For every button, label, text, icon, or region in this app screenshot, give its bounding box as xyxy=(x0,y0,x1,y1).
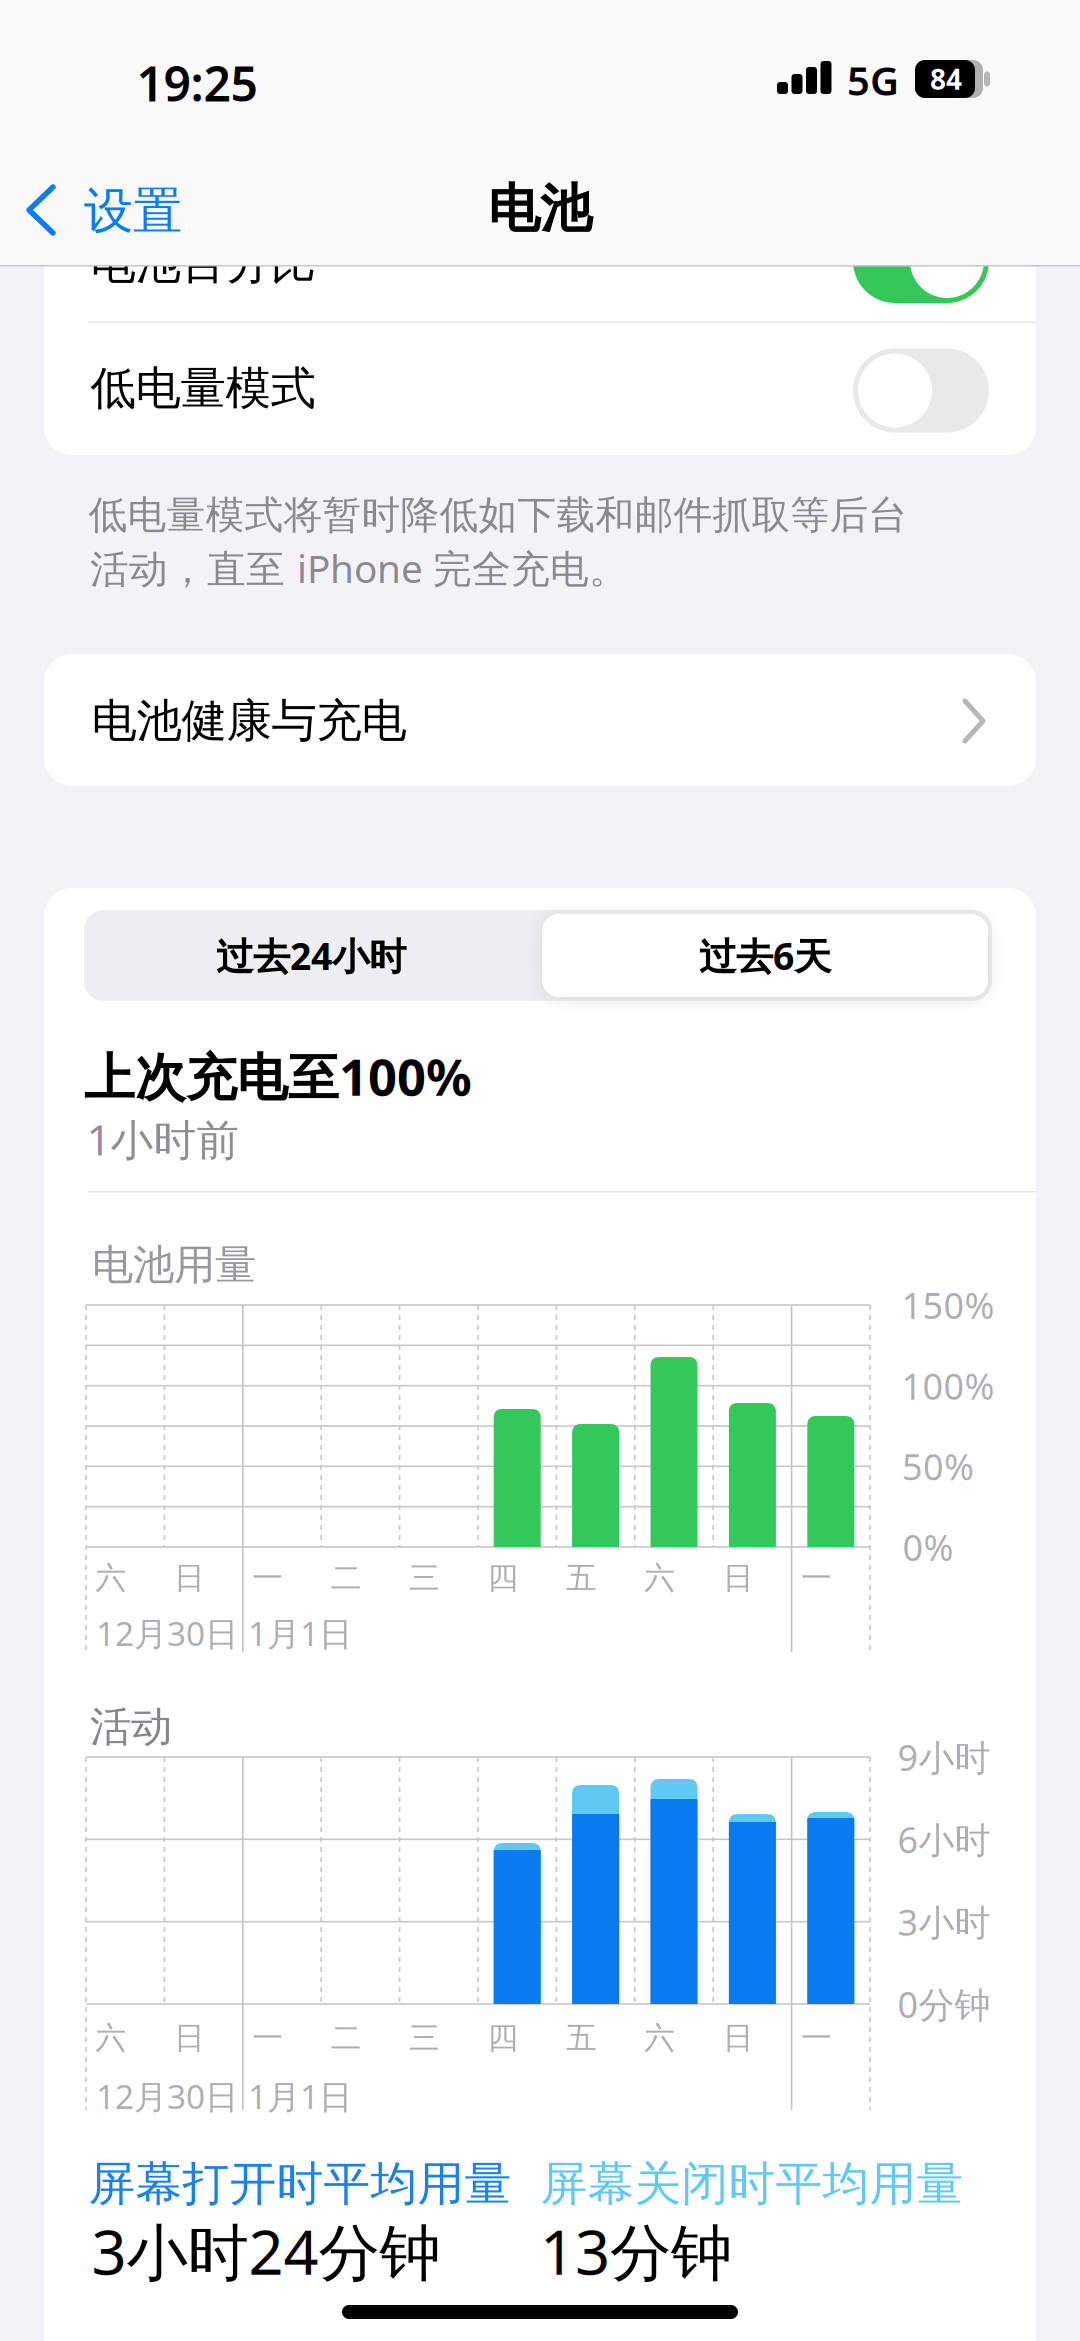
staticText: 四 xyxy=(487,2019,518,2057)
staticText: 设置 xyxy=(84,181,182,241)
staticText: 五 xyxy=(566,2019,597,2057)
staticText: 五 xyxy=(566,1559,597,1597)
staticText: 1小时前 xyxy=(86,1111,239,1167)
button[interactable]: 低电量模式 xyxy=(44,322,1036,455)
staticText: 5G xyxy=(847,53,899,106)
staticText: 一 xyxy=(801,1559,832,1597)
staticText: 一 xyxy=(252,2019,283,2057)
staticText: 活动 xyxy=(90,1702,172,1752)
button[interactable]: 电池百分比 xyxy=(44,189,1036,322)
staticText: 六 xyxy=(644,1559,675,1597)
staticText: 三 xyxy=(409,2019,440,2057)
staticText: 日 xyxy=(723,2019,754,2057)
staticText: 50% xyxy=(902,1442,974,1490)
staticText: 13分钟 xyxy=(540,2210,732,2292)
staticText: 100% xyxy=(901,1362,994,1410)
staticText: 12月30日 xyxy=(96,2074,238,2118)
staticText: 二 xyxy=(331,2019,362,2057)
staticText: 低电量模式将暂时降低如下载和邮件抓取等后台 xyxy=(88,491,907,539)
staticText: 84 xyxy=(930,60,962,98)
staticText: 电池用量 xyxy=(92,1240,256,1290)
staticText: 四 xyxy=(487,1559,518,1597)
staticText: 0分钟 xyxy=(897,1980,990,2028)
staticText: 六 xyxy=(95,2019,126,2057)
staticText: 3小时 xyxy=(897,1898,990,1946)
staticText: 12月30日 xyxy=(96,1611,238,1655)
staticText: 日 xyxy=(174,2019,205,2057)
staticText: 日 xyxy=(174,1559,205,1597)
staticText: 屏幕关闭时平均用量 xyxy=(540,2155,963,2213)
staticText: 三 xyxy=(409,1559,440,1597)
staticText: 活动，直至 iPhone 完全充电。 xyxy=(90,542,628,594)
staticText: 9小时 xyxy=(897,1733,990,1781)
staticText: 日 xyxy=(723,1559,754,1597)
staticText: 6小时 xyxy=(897,1815,990,1863)
staticText: 六 xyxy=(95,1559,126,1597)
staticText: 0% xyxy=(902,1523,953,1571)
staticText: 3小时24分钟 xyxy=(91,2210,440,2292)
staticText: 低电量模式 xyxy=(90,361,315,416)
staticText: 150% xyxy=(901,1281,994,1329)
staticText: 上次充电至100% xyxy=(84,1042,472,1110)
staticText: 电池 xyxy=(488,177,592,241)
staticText: 屏幕打开时平均用量 xyxy=(88,2155,511,2213)
staticText: 1月1日 xyxy=(248,1611,352,1655)
staticText: 电池健康与充电 xyxy=(91,693,406,749)
staticText: 19:25 xyxy=(136,51,257,115)
staticText: 过去24小时 xyxy=(216,931,406,980)
staticText: 一 xyxy=(252,1559,283,1597)
button[interactable]: 电池健康与充电 xyxy=(44,654,1036,786)
staticText: 一 xyxy=(801,2019,832,2057)
staticText: 电池百分比 xyxy=(90,235,315,291)
button[interactable]: 过去24小时 xyxy=(91,914,531,997)
staticText: 二 xyxy=(331,1559,362,1597)
button[interactable]: 返回设置 xyxy=(0,170,210,250)
staticText: 六 xyxy=(644,2019,675,2057)
staticText: 1月1日 xyxy=(248,2074,352,2118)
staticText: 过去6天 xyxy=(699,931,831,980)
button[interactable]: 过去6天 xyxy=(542,914,988,997)
